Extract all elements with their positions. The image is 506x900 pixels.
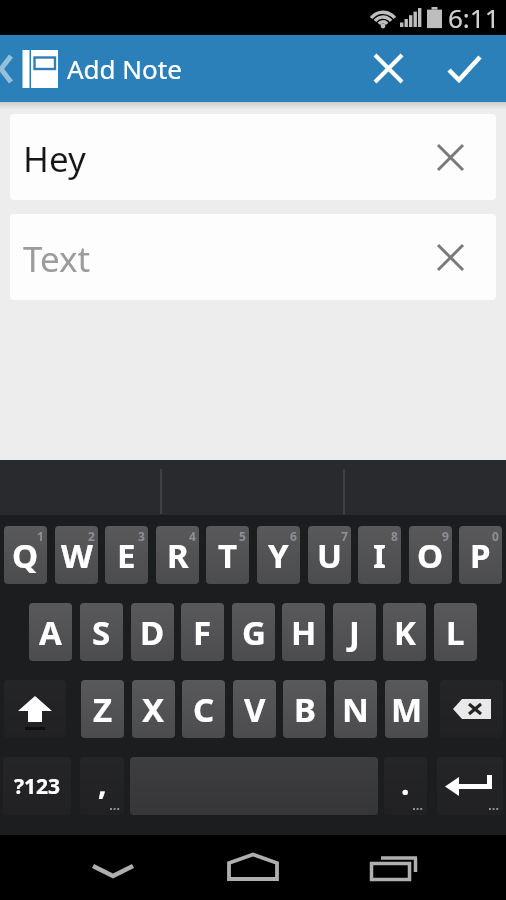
- button[interactable]: Q: [4, 526, 47, 584]
- button[interactable]: Text: [10, 214, 496, 300]
- staticText: Text: [23, 235, 91, 283]
- staticText: E: [117, 533, 136, 578]
- button[interactable]: D: [131, 603, 174, 661]
- button[interactable]: K: [383, 603, 426, 661]
- button[interactable]: [440, 680, 503, 738]
- staticText: A: [39, 610, 62, 655]
- staticText: V: [244, 687, 266, 732]
- staticText: Add Note: [67, 51, 182, 86]
- staticText: I: [373, 533, 386, 578]
- button[interactable]: P: [459, 526, 502, 584]
- button[interactable]: .: [384, 757, 427, 815]
- button[interactable]: [436, 214, 496, 300]
- staticText: M: [391, 687, 423, 732]
- staticText: 4: [189, 528, 196, 544]
- button[interactable]: [436, 114, 496, 200]
- staticText: 5: [239, 528, 246, 544]
- button[interactable]: B: [283, 680, 326, 738]
- button[interactable]: A: [29, 603, 72, 661]
- staticText: 1: [37, 528, 44, 544]
- staticText: D: [140, 610, 165, 655]
- staticText: 0: [492, 528, 499, 544]
- staticText: L: [446, 610, 465, 655]
- button[interactable]: H: [282, 603, 325, 661]
- button[interactable]: I: [358, 526, 401, 584]
- button[interactable]: ?123: [3, 757, 71, 815]
- button[interactable]: S: [80, 603, 123, 661]
- staticText: 3: [138, 528, 145, 544]
- button[interactable]: O: [409, 526, 452, 584]
- button[interactable]: [213, 835, 293, 900]
- button[interactable]: U: [308, 526, 351, 584]
- button[interactable]: ,: [80, 757, 124, 815]
- button[interactable]: M: [385, 680, 428, 738]
- staticText: 6:11: [448, 0, 500, 35]
- staticText: F: [193, 610, 212, 655]
- button[interactable]: X: [132, 680, 175, 738]
- staticText: S: [92, 610, 111, 655]
- staticText: 2: [88, 528, 95, 544]
- staticText: X: [142, 687, 165, 732]
- button[interactable]: [4, 680, 66, 738]
- button[interactable]: [354, 835, 434, 900]
- staticText: P: [470, 533, 491, 578]
- staticText: 7: [341, 528, 348, 544]
- staticText: U: [317, 533, 342, 578]
- button[interactable]: [437, 757, 503, 815]
- button[interactable]: N: [334, 680, 377, 738]
- button[interactable]: [416, 35, 506, 102]
- staticText: W: [61, 533, 93, 578]
- button[interactable]: Hey: [10, 114, 496, 200]
- staticText: T: [218, 533, 238, 578]
- staticText: ,: [98, 763, 107, 804]
- button[interactable]: W: [55, 526, 98, 584]
- button[interactable]: [360, 35, 416, 102]
- staticText: Hey: [23, 135, 86, 183]
- button[interactable]: C: [182, 680, 225, 738]
- staticText: 8: [391, 528, 398, 544]
- staticText: 6: [290, 528, 297, 544]
- staticText: G: [242, 610, 266, 655]
- button[interactable]: [73, 835, 153, 900]
- button[interactable]: T: [206, 526, 249, 584]
- staticText: K: [394, 610, 416, 655]
- button[interactable]: R: [156, 526, 199, 584]
- staticText: R: [167, 533, 189, 578]
- staticText: C: [193, 687, 215, 732]
- staticText: Q: [12, 533, 39, 578]
- button[interactable]: Z: [81, 680, 124, 738]
- staticText: N: [342, 687, 369, 732]
- button[interactable]: J: [333, 603, 376, 661]
- button[interactable]: E: [105, 526, 148, 584]
- button[interactable]: G: [232, 603, 275, 661]
- button[interactable]: L: [434, 603, 477, 661]
- button[interactable]: F: [181, 603, 224, 661]
- staticText: B: [294, 687, 316, 732]
- staticText: Z: [93, 687, 113, 732]
- button[interactable]: V: [233, 680, 276, 738]
- staticText: Y: [268, 533, 289, 578]
- staticText: O: [417, 533, 444, 578]
- staticText: ?123: [14, 772, 61, 801]
- button[interactable]: [0, 35, 20, 102]
- staticText: H: [291, 610, 317, 655]
- button[interactable]: Y: [257, 526, 300, 584]
- staticText: .: [401, 763, 410, 804]
- staticText: J: [349, 610, 360, 655]
- staticText: 9: [442, 528, 449, 544]
